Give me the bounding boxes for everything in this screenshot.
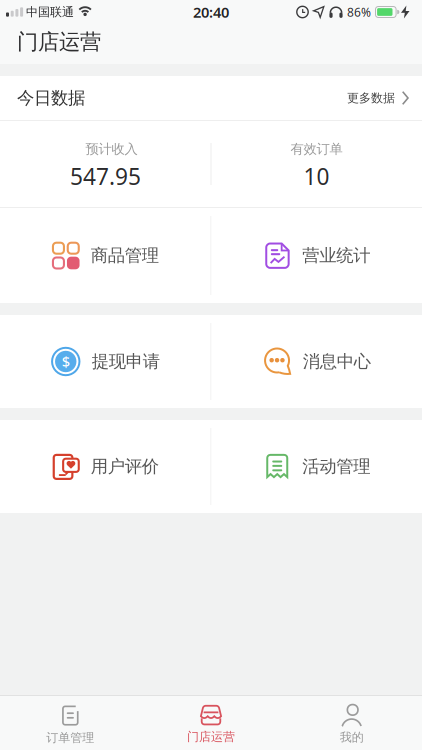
button[interactable]: 我的 bbox=[281, 704, 422, 744]
staticText: 中国联通 bbox=[26, 5, 74, 19]
staticText: 商品管理 bbox=[91, 245, 159, 266]
staticText: 预计收入 bbox=[85, 141, 137, 157]
staticText: 营业统计 bbox=[302, 245, 370, 266]
button[interactable]: 商品管理 bbox=[0, 208, 210, 303]
staticText: 20:40 bbox=[193, 2, 229, 22]
button[interactable]: 用户评价 bbox=[0, 420, 210, 513]
button[interactable]: 门店运营 bbox=[141, 705, 281, 744]
button[interactable]: 消息中心 bbox=[211, 315, 422, 408]
staticText: 用户评价 bbox=[91, 456, 159, 477]
staticText: 更多数据 bbox=[347, 91, 395, 105]
button[interactable]: 活动管理 bbox=[211, 420, 422, 513]
staticText: 今日数据 bbox=[17, 87, 85, 109]
button[interactable]: 今日数据 bbox=[0, 76, 422, 120]
staticText: 我的 bbox=[340, 730, 364, 744]
button[interactable]: $ bbox=[0, 315, 210, 408]
staticText: 活动管理 bbox=[302, 456, 370, 477]
staticText: 10 bbox=[303, 161, 329, 191]
staticText: 86% bbox=[347, 4, 371, 20]
button[interactable]: 营业统计 bbox=[211, 208, 422, 303]
staticText: 有效订单 bbox=[290, 141, 342, 157]
button[interactable]: 订单管理 bbox=[0, 704, 141, 745]
staticText: 订单管理 bbox=[46, 730, 94, 745]
staticText: 提现申请 bbox=[92, 351, 160, 372]
staticText: 547.95 bbox=[70, 161, 141, 191]
staticText: $ bbox=[62, 352, 70, 371]
staticText: 消息中心 bbox=[303, 351, 371, 372]
staticText: 门店运营 bbox=[187, 729, 235, 744]
staticText: 门店运营 bbox=[17, 29, 101, 55]
